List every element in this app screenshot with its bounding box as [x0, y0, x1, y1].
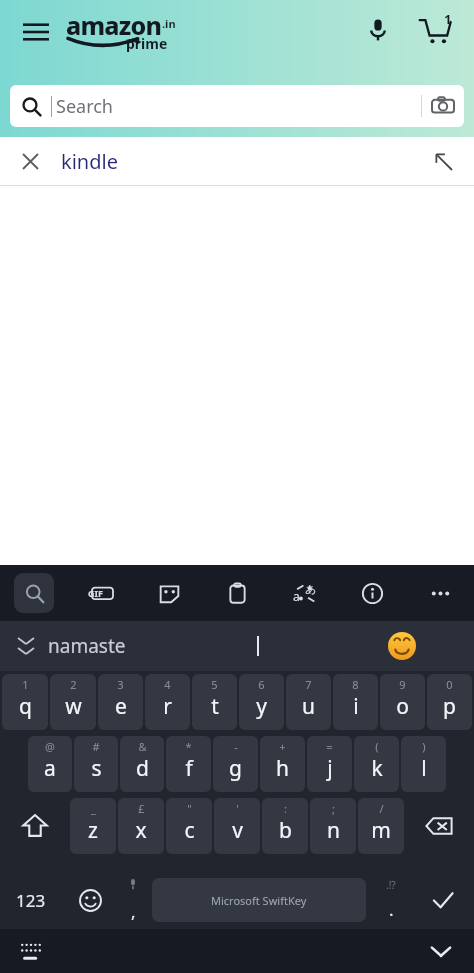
- staticText: 1: [444, 10, 452, 28]
- staticText: 1: [22, 677, 29, 692]
- button[interactable]: Emoji: [62, 871, 118, 929]
- staticText: -: [234, 739, 238, 754]
- button[interactable]: [186, 621, 330, 671]
- button[interactable]: Comma and voice input: [118, 871, 148, 929]
- button[interactable]: ;: [310, 798, 356, 854]
- button[interactable]: =: [307, 736, 352, 792]
- staticText: t: [211, 692, 219, 721]
- staticText: amazon: [66, 8, 162, 42]
- staticText: prime: [126, 34, 168, 53]
- staticText: c: [184, 816, 195, 845]
- button[interactable]: ): [401, 736, 446, 792]
- staticText: ;: [332, 801, 335, 816]
- staticText: ): [422, 739, 426, 754]
- staticText: o: [396, 692, 409, 721]
- staticText: 6: [258, 677, 265, 692]
- button[interactable]: Voice search: [356, 8, 400, 52]
- button[interactable]: (: [354, 736, 399, 792]
- button[interactable]: Cart, 1 item: [412, 8, 458, 54]
- button[interactable]: _: [70, 798, 116, 854]
- staticText: GIF: [88, 587, 103, 599]
- staticText: kindle: [61, 148, 428, 175]
- staticText: u: [302, 692, 315, 721]
- button[interactable]: Enter: [412, 871, 474, 929]
- button[interactable]: 7: [286, 674, 331, 730]
- button[interactable]: :: [262, 798, 308, 854]
- button[interactable]: Remove suggestion: [0, 137, 474, 185]
- button[interactable]: £: [118, 798, 164, 854]
- staticText: l: [421, 754, 427, 783]
- button[interactable]: ': [214, 798, 260, 854]
- button[interactable]: Space: [152, 878, 366, 922]
- button[interactable]: Backspace: [406, 795, 472, 857]
- staticText: w: [65, 692, 82, 721]
- staticText: p: [443, 692, 456, 721]
- button[interactable]: 0: [427, 674, 472, 730]
- staticText: =: [326, 739, 333, 754]
- button[interactable]: 5: [192, 674, 237, 730]
- staticText: x: [135, 816, 147, 845]
- button[interactable]: Switch keyboard: [14, 934, 48, 968]
- button[interactable]: &: [120, 736, 164, 792]
- staticText: ': [236, 801, 239, 816]
- button[interactable]: More options: [420, 573, 460, 613]
- staticText: h: [276, 754, 289, 783]
- button[interactable]: *: [166, 736, 211, 792]
- button[interactable]: Stickers: [149, 573, 189, 613]
- staticText: ": [187, 801, 192, 816]
- button[interactable]: Search: [14, 573, 54, 613]
- staticText: 7: [305, 677, 312, 692]
- button[interactable]: Clipboard: [217, 573, 257, 613]
- button[interactable]: amazon: [64, 6, 186, 58]
- staticText: あ: [305, 582, 317, 596]
- staticText: s: [91, 754, 102, 783]
- button[interactable]: 2: [50, 674, 96, 730]
- staticText: Microsoft SwiftKey: [211, 893, 307, 908]
- button[interactable]: Search: [10, 85, 464, 127]
- button[interactable]: 9: [380, 674, 425, 730]
- button[interactable]: Period and punctuation: [370, 871, 412, 929]
- button[interactable]: Search by camera: [422, 85, 464, 127]
- button[interactable]: Translate: [285, 573, 325, 613]
- staticText: .!?: [386, 878, 396, 892]
- button[interactable]: GIF: [82, 573, 122, 613]
- button[interactable]: 123: [0, 871, 62, 929]
- button[interactable]: 6: [239, 674, 284, 730]
- staticText: :: [284, 801, 287, 816]
- staticText: q: [19, 692, 32, 721]
- button[interactable]: Info: [352, 573, 392, 613]
- button[interactable]: namaste: [42, 621, 186, 671]
- staticText: *: [185, 739, 192, 754]
- button[interactable]: [330, 621, 474, 671]
- button[interactable]: /: [358, 798, 404, 854]
- button[interactable]: ": [166, 798, 212, 854]
- staticText: 2: [70, 677, 77, 692]
- button[interactable]: 3: [98, 674, 143, 730]
- staticText: a: [44, 754, 56, 783]
- staticText: @: [45, 739, 55, 754]
- staticText: n: [327, 816, 340, 845]
- button[interactable]: Collapse predictions: [10, 630, 42, 662]
- staticText: 8: [352, 677, 359, 692]
- button[interactable]: Hide keyboard: [422, 932, 460, 970]
- button[interactable]: -: [213, 736, 258, 792]
- staticText: 3: [117, 677, 124, 692]
- button[interactable]: #: [74, 736, 118, 792]
- button[interactable]: +: [260, 736, 305, 792]
- staticText: f: [185, 754, 193, 783]
- button[interactable]: 8: [333, 674, 378, 730]
- staticText: ,: [131, 900, 136, 923]
- staticText: 9: [399, 677, 406, 692]
- button[interactable]: Menu: [14, 10, 58, 54]
- button[interactable]: Remove suggestion: [16, 147, 44, 175]
- staticText: 5: [211, 677, 218, 692]
- button[interactable]: Use suggestion: [428, 146, 458, 176]
- staticText: z: [88, 816, 98, 845]
- button[interactable]: @: [28, 736, 72, 792]
- button[interactable]: 1: [2, 674, 48, 730]
- staticText: Search: [56, 94, 421, 119]
- button[interactable]: 4: [145, 674, 190, 730]
- staticText: j: [327, 754, 333, 783]
- staticText: _: [91, 801, 96, 816]
- button[interactable]: Shift: [2, 795, 68, 857]
